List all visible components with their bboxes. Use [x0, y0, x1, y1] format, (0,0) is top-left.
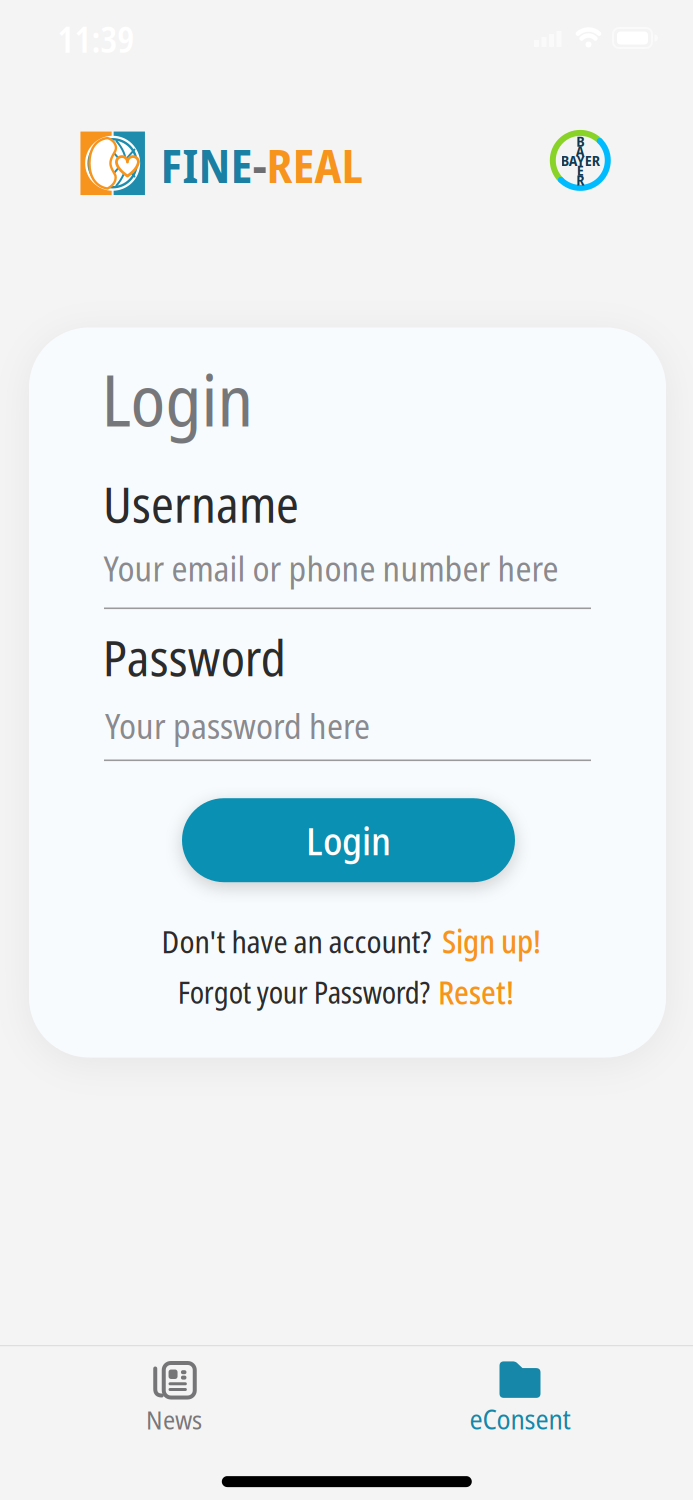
- button[interactable]: Login: [182, 798, 515, 882]
- staticText: E: [577, 160, 584, 180]
- button[interactable]: Reset!: [438, 970, 514, 1014]
- staticText: News: [146, 1402, 202, 1437]
- staticText: Your email or phone number here: [103, 544, 558, 592]
- staticText: Username: [103, 470, 299, 537]
- staticText: -: [252, 133, 266, 197]
- staticText: B: [576, 131, 584, 151]
- staticText: Password: [103, 623, 286, 691]
- button[interactable]: News: [146, 1363, 202, 1437]
- staticText: Your password here: [105, 702, 370, 749]
- staticText: eConsent: [469, 1400, 570, 1438]
- staticText: Don't have an account?: [161, 920, 431, 962]
- staticText: Sign up!: [442, 919, 541, 963]
- staticText: Forgot your Password?: [178, 972, 430, 1012]
- staticText: 11:39: [57, 15, 134, 63]
- staticText: REAL: [266, 133, 362, 197]
- staticText: R: [576, 170, 584, 190]
- staticText: A: [576, 141, 585, 161]
- staticText: FINE: [160, 133, 252, 197]
- staticText: BAYER: [561, 150, 600, 170]
- staticText: Login: [101, 351, 253, 447]
- staticText: Login: [306, 814, 391, 867]
- button[interactable]: Sign up!: [442, 919, 541, 963]
- staticText: Reset!: [438, 970, 514, 1014]
- button[interactable]: eConsent: [469, 1361, 570, 1438]
